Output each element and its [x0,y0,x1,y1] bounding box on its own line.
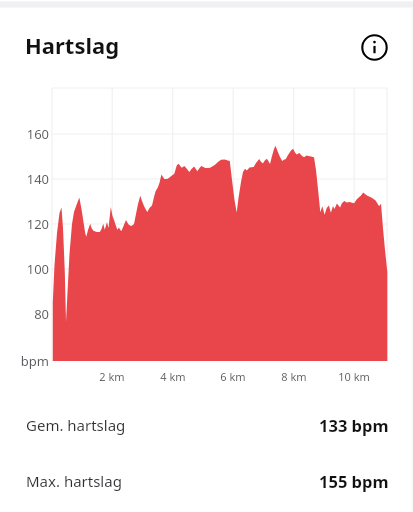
staticText: 160 [0,125,49,143]
staticText: 120 [0,215,49,233]
staticText: 8 km [264,369,324,384]
staticText: 2 km [82,369,142,384]
button[interactable]: Max. hartslag [0,453,413,509]
staticText: 133 bpm [319,414,389,436]
staticText: 140 [0,170,49,188]
staticText: Hartslag [25,30,120,60]
staticText: 4 km [143,369,203,384]
staticText: 6 km [203,369,263,384]
staticText: Gem. hartslag [26,415,126,435]
button[interactable]: Info [358,31,391,64]
staticText: 155 bpm [319,470,389,492]
button[interactable]: Gem. hartslag [0,397,413,453]
staticText: 80 [0,305,49,323]
staticText: bpm [0,352,49,370]
staticText: 10 km [324,369,384,384]
staticText: 100 [0,260,49,278]
staticText: Max. hartslag [26,471,122,491]
